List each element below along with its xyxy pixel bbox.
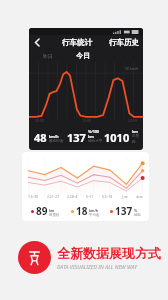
staticText: km/h [49,134,59,139]
staticText: 137 [115,204,133,218]
staticText: 12:00 [82,118,91,123]
staticText: 本周 [136,195,143,199]
staticText: %/100 km [88,129,104,139]
staticText: 30 km/h [125,66,139,71]
staticText: km [132,129,138,134]
staticText: 能耗水平 [88,139,103,144]
staticText: 18 [76,204,88,218]
staticText: 最高时速 [49,139,64,144]
staticText: 全新数据展现方式 [57,245,161,261]
other: Scooter [18,241,51,274]
staticText: % [134,208,138,213]
button[interactable]: 48 [31,130,67,145]
staticText: 137 [67,130,86,145]
button[interactable]: 89 [26,204,65,218]
staticText: 23:59 [128,118,137,123]
staticText: 周里程 [49,213,60,217]
staticText: 行车历史 [109,38,139,47]
staticText: DATA VISUALIZED IN ALL NEW WAY [57,263,137,270]
staticText: 5-5~18 [102,195,113,199]
staticText: km [49,208,55,213]
button[interactable]: 18 [65,204,105,218]
button[interactable]: 1010 [104,129,141,145]
staticText: 能耗 [134,213,141,217]
staticText: 48 [34,130,47,145]
staticText: 2-21~27 [47,195,59,199]
staticText: 平均速 [89,213,100,217]
button[interactable]: Back [29,35,45,49]
staticText: 总里程 [132,134,141,144]
staticText: 昨日 [43,53,53,59]
staticText: 上周 [121,195,128,199]
staticText: 00:00 [35,118,44,123]
staticText: 今日 [76,51,90,60]
staticText: 5~11 [86,195,94,199]
button[interactable]: Scooter [18,241,161,274]
staticText: 行车统计 [62,38,92,47]
staticText: 7-6~20 [28,195,39,199]
staticText: 2-28~4 [67,195,78,199]
staticText: 89 [36,204,48,218]
staticText: km/h [89,208,99,213]
button[interactable]: 137 [67,129,104,145]
staticText: 1010 [104,130,130,145]
button[interactable]: 137 [105,204,145,218]
button[interactable]: 行车历史 [109,38,139,47]
